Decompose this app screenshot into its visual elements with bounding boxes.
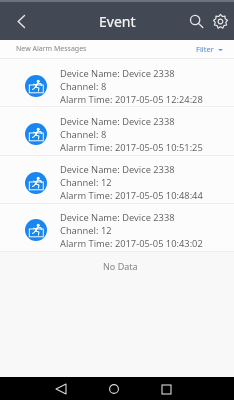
staticText: Device Name: Device 2338 Channel: 12 Ala… <box>60 163 203 202</box>
button[interactable]: Search <box>185 10 207 32</box>
button[interactable]: Recents <box>155 378 177 400</box>
staticText: Device Name: Device 2338 Channel: 12 Ala… <box>60 211 203 250</box>
button[interactable]: Device Name: Device 2338 Channel: 12 Ala… <box>0 156 234 204</box>
button[interactable]: Device Name: Device 2338 Channel: 8 Alar… <box>0 59 234 107</box>
button[interactable]: Back <box>0 2 42 40</box>
staticText: Device Name: Device 2338 Channel: 8 Alar… <box>60 115 203 154</box>
button[interactable]: Settings <box>207 8 233 34</box>
button[interactable]: Device Name: Device 2338 Channel: 12 Ala… <box>0 204 234 252</box>
button[interactable]: Back <box>50 378 72 400</box>
staticText: Event <box>99 12 136 31</box>
staticText: New Alarm Messages <box>16 44 87 54</box>
button[interactable]: Device Name: Device 2338 Channel: 8 Alar… <box>0 107 234 156</box>
staticText: No Data <box>103 260 138 272</box>
staticText: Device Name: Device 2338 Channel: 8 Alar… <box>60 67 203 106</box>
button[interactable]: Filter <box>196 44 223 54</box>
staticText: Filter <box>196 44 214 54</box>
button[interactable]: Home <box>103 378 125 400</box>
